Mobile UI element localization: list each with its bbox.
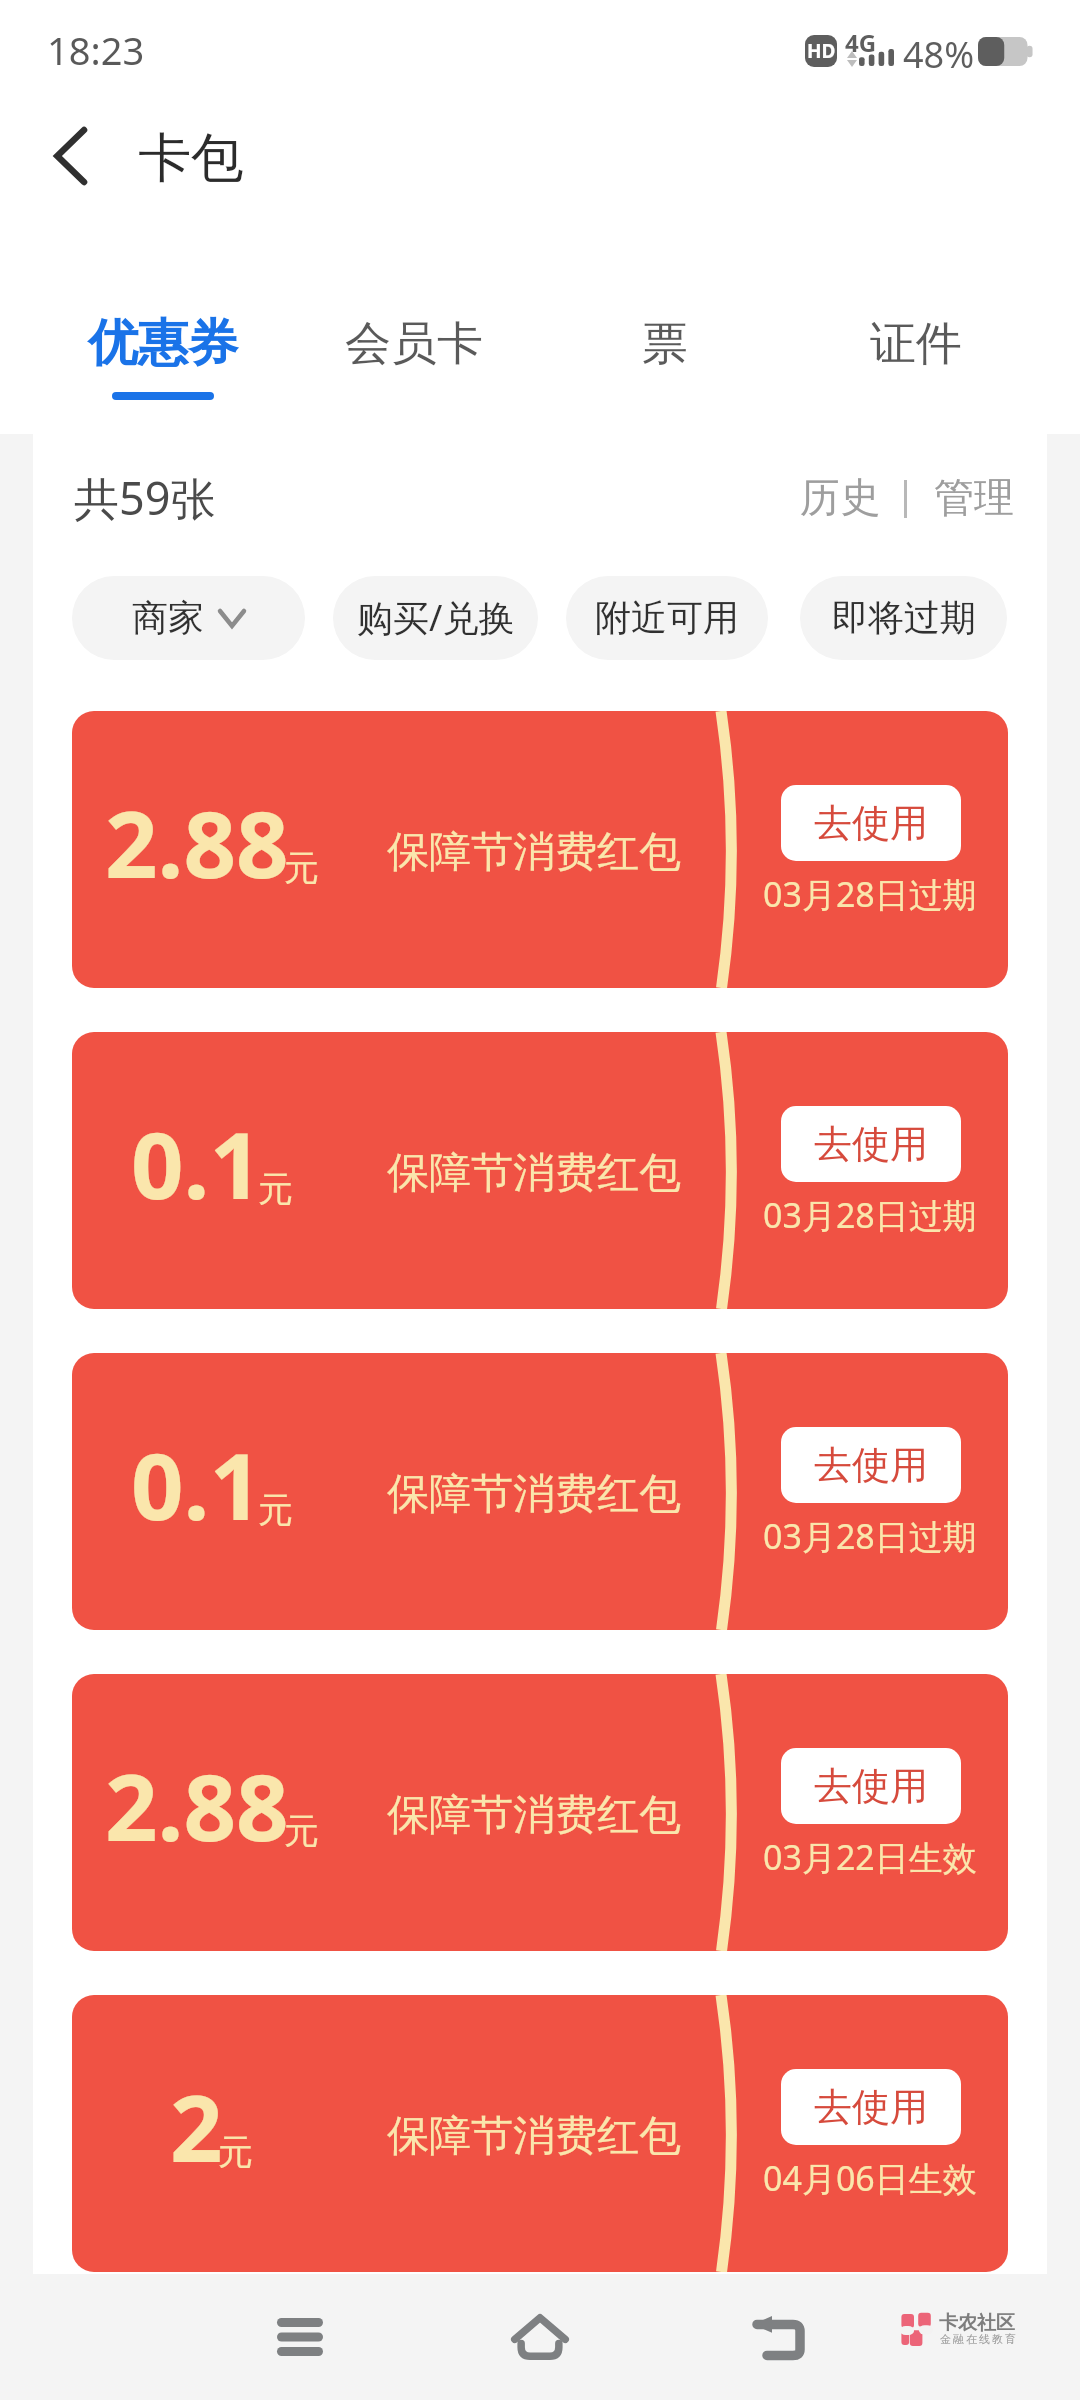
staticText: 0.1 bbox=[131, 1422, 263, 1547]
staticText: 卡包 bbox=[138, 125, 244, 192]
button[interactable]: 优惠券 bbox=[38, 208, 288, 334]
staticText: 元 bbox=[284, 1809, 319, 1853]
staticText: 03月28日过期 bbox=[763, 1192, 977, 1238]
staticText: 48% bbox=[903, 30, 975, 79]
staticText: 0.1 bbox=[131, 1101, 263, 1226]
staticText: 18:23 bbox=[47, 24, 145, 76]
staticText: 商家 bbox=[132, 595, 204, 640]
staticText: 去使用 bbox=[814, 2083, 928, 2131]
staticText: 2.88 bbox=[105, 1743, 289, 1868]
staticText: 保障节消费红包 bbox=[387, 1468, 681, 1521]
staticText: 03月22日生效 bbox=[763, 1834, 977, 1880]
button[interactable]: 2 bbox=[72, 1995, 1008, 2272]
staticText: 管理 bbox=[934, 472, 1014, 522]
staticText: HD bbox=[807, 38, 836, 64]
staticText: 2.88 bbox=[105, 780, 289, 905]
button[interactable]: Back bbox=[30, 115, 112, 197]
staticText: 证件 bbox=[870, 315, 962, 373]
staticText: 票 bbox=[642, 315, 688, 373]
button[interactable]: 会员卡 bbox=[288, 208, 539, 334]
staticText: 元 bbox=[258, 1488, 293, 1532]
staticText: 会员卡 bbox=[345, 315, 483, 373]
staticText: 元 bbox=[218, 2130, 253, 2174]
button[interactable]: 去使用 bbox=[781, 785, 961, 861]
staticText: 保障节消费红包 bbox=[387, 1147, 681, 1200]
staticText: 金融在线教育 bbox=[939, 2332, 1017, 2346]
button[interactable]: Back bbox=[715, 2274, 841, 2400]
staticText: 去使用 bbox=[814, 1120, 928, 1168]
staticText: 保障节消费红包 bbox=[387, 1789, 681, 1842]
button[interactable]: 商家 bbox=[72, 576, 305, 660]
staticText: 卡农社区 bbox=[939, 2311, 1015, 2335]
staticText: 03月28日过期 bbox=[763, 871, 977, 917]
button[interactable]: 购买/兑换 bbox=[333, 576, 538, 660]
staticText: 共59张 bbox=[74, 467, 216, 528]
staticText: 元 bbox=[284, 846, 319, 890]
staticText: 历史 bbox=[800, 472, 880, 522]
staticText: 去使用 bbox=[814, 1441, 928, 1489]
button[interactable]: 管理 bbox=[907, 474, 1041, 524]
staticText: 去使用 bbox=[814, 1762, 928, 1810]
button[interactable]: 附近可用 bbox=[566, 576, 768, 660]
staticText: 去使用 bbox=[814, 799, 928, 847]
button[interactable]: 2.88 bbox=[72, 1674, 1008, 1951]
staticText: 保障节消费红包 bbox=[387, 826, 681, 879]
staticText: 附近可用 bbox=[595, 595, 739, 640]
staticText: 2 bbox=[170, 2064, 223, 2189]
button[interactable]: Home bbox=[477, 2274, 603, 2400]
staticText: 优惠券 bbox=[88, 312, 238, 375]
button[interactable]: 0.1 bbox=[72, 1032, 1008, 1309]
button[interactable]: 2.88 bbox=[72, 711, 1008, 988]
staticText: 03月28日过期 bbox=[763, 1513, 977, 1559]
staticText: 4G bbox=[845, 26, 877, 59]
button[interactable]: 历史 bbox=[776, 474, 904, 524]
button[interactable]: 去使用 bbox=[781, 2069, 961, 2145]
button[interactable]: 去使用 bbox=[781, 1427, 961, 1503]
staticText: 元 bbox=[258, 1167, 293, 1211]
staticText: 即将过期 bbox=[832, 595, 976, 640]
button[interactable]: 去使用 bbox=[781, 1106, 961, 1182]
button[interactable]: Recent apps bbox=[237, 2274, 363, 2400]
button[interactable]: 即将过期 bbox=[800, 576, 1007, 660]
button[interactable]: 0.1 bbox=[72, 1353, 1008, 1630]
staticText: 购买/兑换 bbox=[357, 593, 515, 642]
staticText: 04月06日生效 bbox=[763, 2155, 977, 2201]
button[interactable]: 去使用 bbox=[781, 1748, 961, 1824]
staticText: 保障节消费红包 bbox=[387, 2110, 681, 2163]
button[interactable]: 证件 bbox=[790, 208, 1041, 334]
button[interactable]: 票 bbox=[539, 208, 790, 334]
